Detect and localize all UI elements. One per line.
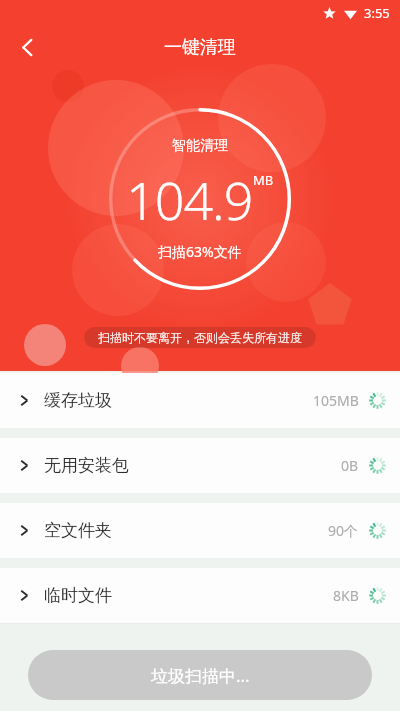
button[interactable]: 垃圾扫描中... — [28, 650, 372, 700]
staticText: 一键清理 — [164, 36, 236, 59]
staticText: 0B — [341, 456, 359, 475]
staticText: 空文件夹 — [44, 520, 112, 541]
staticText: 临时文件 — [44, 585, 112, 606]
button[interactable]: 临时文件 — [0, 568, 400, 623]
button[interactable]: 空文件夹 — [0, 503, 400, 558]
staticText: 扫描时不要离开，否则会丢失所有进度 — [98, 330, 302, 345]
staticText: MB — [253, 171, 274, 189]
button[interactable]: 无用安装包 — [0, 438, 400, 493]
staticText: 90个 — [328, 521, 359, 540]
staticText: 3:55 — [364, 4, 390, 22]
staticText: 无用安装包 — [44, 455, 129, 476]
staticText: 8KB — [333, 586, 359, 605]
staticText: 缓存垃圾 — [44, 390, 112, 411]
staticText: 扫描63%文件 — [158, 242, 242, 261]
staticText: 智能清理 — [172, 137, 228, 155]
staticText: 105MB — [313, 391, 359, 410]
staticText: 104.9 — [126, 164, 253, 235]
staticText: 垃圾扫描中... — [151, 664, 250, 687]
button[interactable]: Back — [6, 26, 48, 68]
button[interactable]: 缓存垃圾 — [0, 373, 400, 428]
